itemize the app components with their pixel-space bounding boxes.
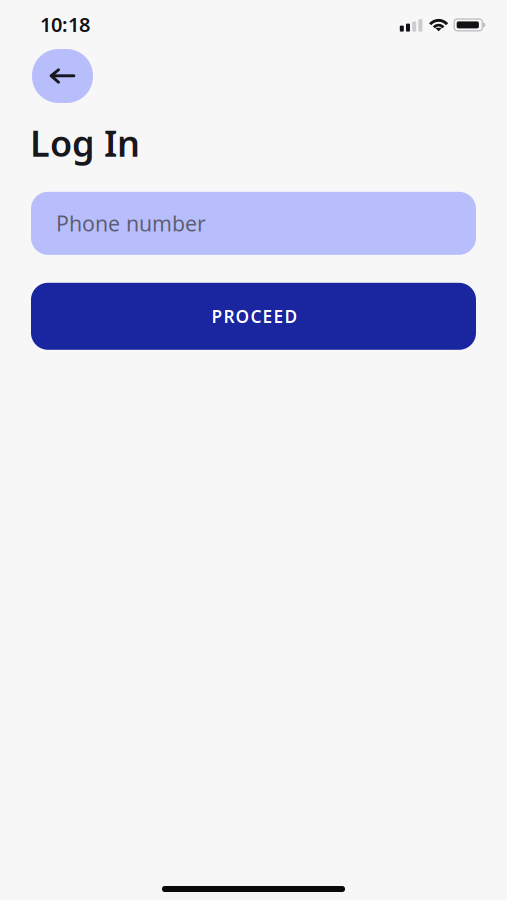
staticText: Log In [30, 119, 140, 167]
button[interactable]: Phone number [31, 192, 476, 255]
staticText: 10:18 [40, 11, 90, 38]
button[interactable]: Back [32, 49, 93, 103]
staticText: PROCEED [211, 305, 297, 328]
staticText: Phone number [56, 209, 206, 237]
button[interactable]: PROCEED [31, 283, 476, 350]
